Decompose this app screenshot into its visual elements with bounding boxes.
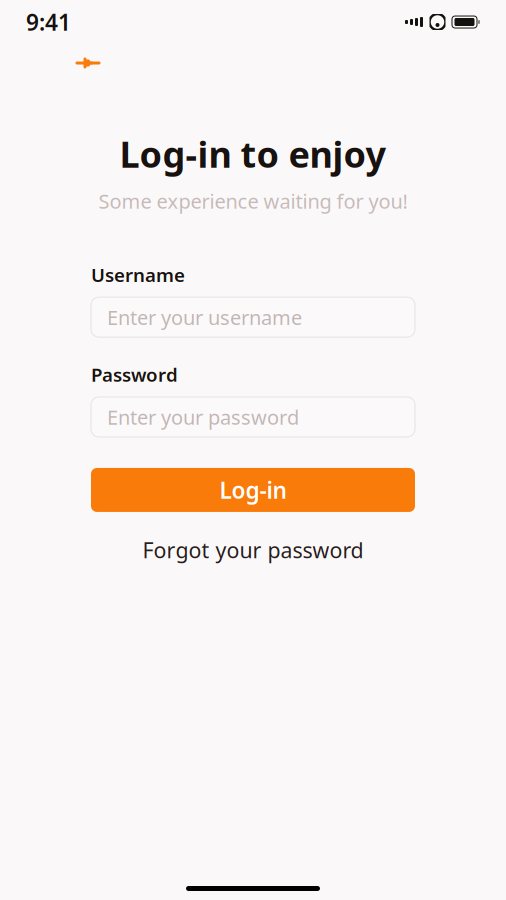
button[interactable]: Back (66, 43, 110, 83)
staticText: Enter your password (107, 404, 299, 430)
button[interactable]: Forgot your password (91, 536, 415, 564)
staticText: Some experience waiting for you! (98, 188, 407, 214)
staticText: Username (91, 262, 185, 287)
button[interactable]: Log-in (91, 468, 415, 512)
staticText: Log-in to enjoy (119, 130, 386, 178)
staticText: Forgot your password (142, 536, 363, 564)
staticText: Password (91, 362, 178, 387)
staticText: Log-in (219, 475, 286, 505)
staticText: Enter your username (107, 304, 302, 330)
staticText: 9:41 (26, 7, 71, 37)
